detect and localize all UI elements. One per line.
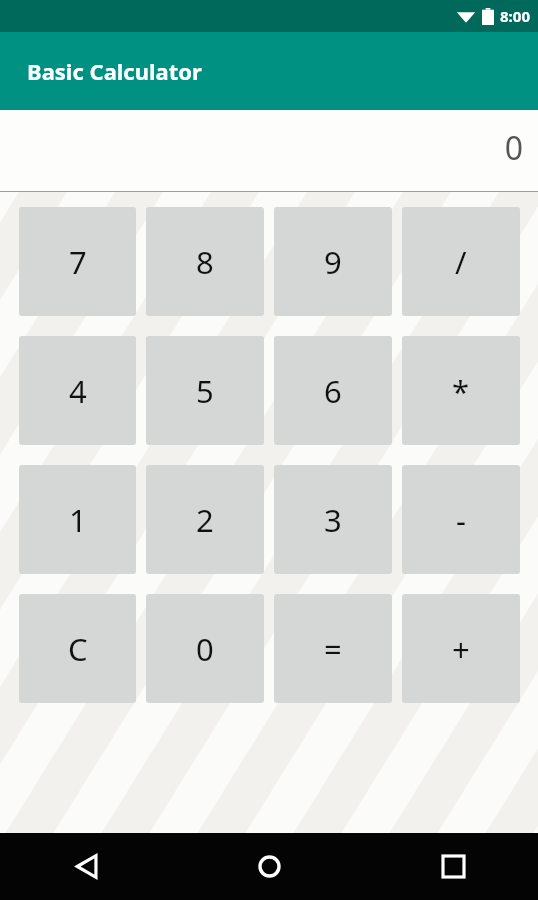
staticText: 1 [69,499,87,541]
button[interactable]: Home [245,833,293,900]
button[interactable]: 7 [19,207,136,316]
staticText: 9 [324,241,342,283]
staticText: 2 [196,499,214,541]
button[interactable]: 5 [146,336,264,445]
button[interactable]: * [402,336,520,445]
button[interactable]: C [19,594,136,703]
staticText: 6 [324,370,342,412]
button[interactable]: 8 [146,207,264,316]
button[interactable]: 2 [146,465,264,574]
button[interactable]: 0 [146,594,264,703]
staticText: Basic Calculator [27,56,202,86]
staticText: - [456,499,466,541]
button[interactable]: - [402,465,520,574]
staticText: 5 [196,370,214,412]
button[interactable]: Recent apps [429,833,477,900]
button[interactable]: = [274,594,392,703]
button[interactable]: + [402,594,520,703]
button[interactable]: 1 [19,465,136,574]
button[interactable]: 6 [274,336,392,445]
staticText: 0 [504,126,523,170]
staticText: / [455,241,467,283]
staticText: 8:00 [500,6,530,26]
staticText: 0 [196,628,214,670]
staticText: = [324,628,342,670]
staticText: 7 [69,241,87,283]
staticText: C [68,628,88,670]
button[interactable]: Back [62,833,110,900]
button[interactable]: / [402,207,520,316]
staticText: 3 [324,499,342,541]
staticText: 4 [69,370,87,412]
staticText: 8 [196,241,214,283]
button[interactable]: 9 [274,207,392,316]
staticText: + [452,628,470,670]
button[interactable]: 3 [274,465,392,574]
button[interactable]: 4 [19,336,136,445]
staticText: * [452,370,470,412]
